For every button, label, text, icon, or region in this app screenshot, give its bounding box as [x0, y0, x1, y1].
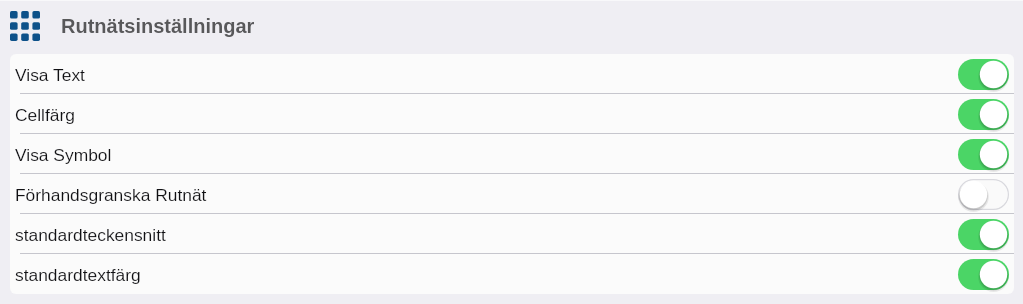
button[interactable]: Visa Text [10, 54, 1014, 94]
button[interactable]: Cellfärg [10, 94, 1014, 134]
button[interactable]: Förhandsgranska Rutnät [10, 174, 1014, 214]
button[interactable]: Förhandsgranska Rutnät, off [958, 179, 1009, 210]
button[interactable]: Cellfärg, on [958, 99, 1009, 130]
staticText: Visa Symbol [15, 145, 112, 164]
button[interactable]: standardteckensnitt [10, 214, 1014, 254]
staticText: standardtextfärg [15, 265, 141, 284]
button[interactable]: Visa Symbol, on [958, 139, 1009, 170]
staticText: Rutnätsinställningar [61, 15, 255, 37]
staticText: Visa Text [15, 65, 85, 84]
button[interactable]: standardtextfärg [10, 254, 1014, 294]
button[interactable]: Visa Symbol [10, 134, 1014, 174]
button[interactable]: Grid [10, 11, 40, 41]
staticText: Cellfärg [15, 105, 75, 124]
button[interactable]: Visa Text, on [958, 59, 1009, 90]
button[interactable]: standardtextfärg, on [958, 259, 1009, 290]
button[interactable]: standardteckensnitt, on [958, 219, 1009, 250]
staticText: standardteckensnitt [15, 225, 166, 244]
staticText: Förhandsgranska Rutnät [15, 185, 207, 204]
